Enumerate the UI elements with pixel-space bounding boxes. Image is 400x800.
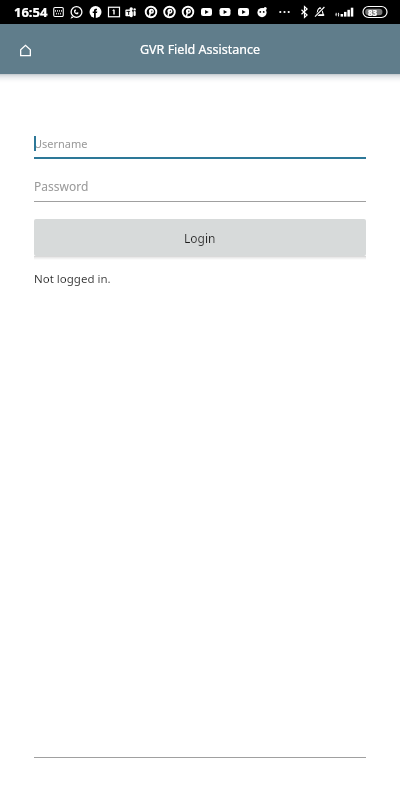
staticText: 16:54 <box>14 3 48 21</box>
staticText: Password <box>34 178 89 193</box>
button[interactable]: Home <box>7 32 43 68</box>
staticText: GVR Field Assistance <box>140 41 261 58</box>
staticText: Not logged in. <box>34 271 111 287</box>
staticText: Username <box>34 136 88 151</box>
staticText: 83 <box>368 7 378 18</box>
button[interactable]: Login <box>34 219 366 256</box>
staticText: Login <box>184 230 216 246</box>
